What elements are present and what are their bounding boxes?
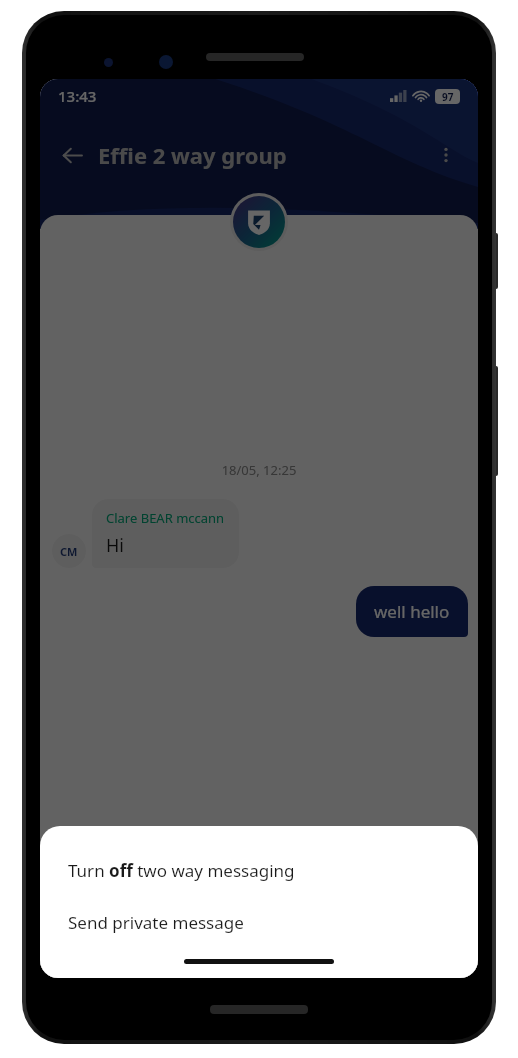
staticText: Effie 2 way group [98,140,424,170]
button[interactable]: Back [50,133,94,177]
staticText: Clare BEAR mccann [106,509,225,527]
staticText: 97 [442,90,454,104]
button[interactable]: Clare BEAR mccann [92,499,239,568]
button[interactable]: well hello [356,586,468,637]
button[interactable]: Message [54,902,464,972]
staticText: Message [70,914,133,934]
staticText: 13:43 [58,86,97,106]
staticText: CM [60,544,78,559]
button[interactable]: Turn off two way messaging [40,848,478,892]
staticText: well hello [374,600,450,623]
button[interactable]: Send private message [40,900,478,944]
staticText: Turn off two way messaging [68,859,295,882]
staticText: Hi [106,533,124,558]
staticText: 18/05, 12:25 [40,461,478,479]
staticText: Send private message [68,911,244,934]
button[interactable]: More options [424,133,468,177]
